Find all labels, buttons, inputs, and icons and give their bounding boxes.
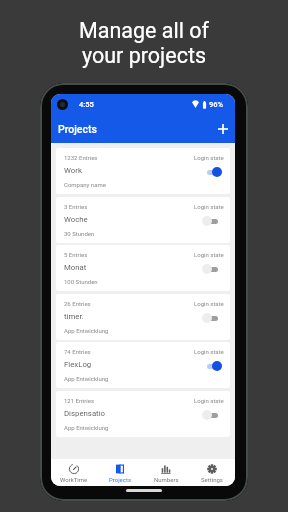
staticText: 100 Stunden (64, 278, 98, 285)
staticText: 4:55 (79, 100, 94, 109)
staticText: Login state (194, 348, 224, 355)
staticText: Work (64, 166, 82, 175)
button[interactable]: 121 Entries (56, 391, 230, 437)
staticText: Login state (194, 251, 224, 258)
staticText: Login state (194, 300, 224, 307)
staticText: Manage all of your projects (0, 18, 288, 68)
staticText: 74 Entries (64, 348, 91, 355)
staticText: Login state (194, 397, 224, 404)
staticText: 1232 Entries (64, 154, 98, 161)
staticText: App Entwicklung (64, 375, 109, 382)
button[interactable]: 3 Entries (56, 197, 230, 243)
button[interactable]: Numbers (143, 459, 189, 486)
button[interactable]: WorkTime (51, 459, 97, 486)
button[interactable]: 74 Entries (56, 342, 230, 388)
button[interactable]: Login state toggle (202, 410, 222, 420)
staticText: Login state (194, 203, 224, 210)
button[interactable]: Add project (213, 119, 233, 139)
button[interactable]: 26 Entries (56, 294, 230, 340)
button[interactable]: Login state toggle (202, 216, 222, 226)
staticText: WorkTime (60, 476, 88, 483)
staticText: Monat (64, 263, 87, 272)
staticText: FlexLog (64, 360, 92, 369)
button[interactable]: 5 Entries (56, 245, 230, 291)
staticText: Projects (58, 123, 97, 135)
staticText: Company name (64, 181, 106, 188)
button[interactable]: 1232 Entries (56, 148, 230, 194)
staticText: 5 Entries (64, 251, 88, 258)
staticText: Settings (201, 476, 223, 483)
staticText: Login state (194, 154, 224, 161)
staticText: 96% (209, 100, 224, 109)
staticText: 121 Entries (64, 397, 95, 404)
staticText: App Entwicklung (64, 327, 109, 334)
staticText: 3 Entries (64, 203, 88, 210)
button[interactable]: Login state toggle (202, 264, 222, 274)
staticText: Dispensatio (64, 409, 106, 418)
staticText: App Entwicklung (64, 424, 109, 431)
button[interactable]: Settings (189, 459, 235, 486)
staticText: 26 Entries (64, 300, 91, 307)
button[interactable]: Login state toggle (202, 361, 222, 371)
button[interactable]: Login state toggle (202, 167, 222, 177)
staticText: Numbers (154, 476, 179, 483)
button[interactable]: Projects (97, 459, 143, 486)
button[interactable]: Login state toggle (202, 313, 222, 323)
staticText: Woche (64, 215, 88, 224)
staticText: Projects (109, 476, 131, 483)
staticText: timer. (64, 312, 84, 321)
staticText: 30 Stunden (64, 230, 95, 237)
